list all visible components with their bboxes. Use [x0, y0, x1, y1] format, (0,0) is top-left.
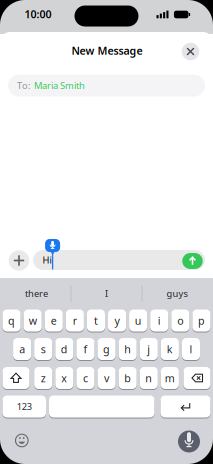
staticText: I: [105, 287, 108, 300]
staticText: k: [167, 342, 173, 356]
staticText: t: [94, 313, 98, 328]
button[interactable]: d: [55, 337, 73, 360]
button[interactable]: s: [34, 337, 52, 360]
staticText: v: [104, 371, 109, 385]
staticText: Hi: [42, 254, 51, 266]
staticText: o: [177, 313, 183, 328]
button[interactable]: v: [97, 366, 116, 389]
button[interactable]: 123: [2, 395, 46, 418]
button[interactable]: b: [119, 366, 137, 389]
staticText: l: [189, 342, 192, 356]
staticText: Maria Smith: [34, 79, 85, 92]
staticText: r: [73, 313, 77, 328]
button[interactable]: [182, 43, 199, 60]
staticText: m: [165, 371, 175, 385]
button[interactable]: n: [140, 366, 158, 389]
staticText: q: [8, 313, 15, 328]
staticText: there: [25, 287, 48, 300]
button[interactable]: a: [13, 337, 31, 360]
staticText: x: [61, 371, 67, 385]
button[interactable]: y: [108, 309, 126, 332]
button[interactable]: there: [3, 284, 69, 303]
button[interactable]: [49, 395, 154, 418]
button[interactable]: guys: [144, 284, 210, 303]
button[interactable]: I: [73, 284, 139, 303]
staticText: p: [198, 313, 205, 328]
staticText: 10:00: [24, 7, 51, 21]
staticText: z: [41, 371, 46, 385]
staticText: d: [61, 342, 68, 356]
button[interactable]: k: [161, 337, 179, 360]
button[interactable]: j: [140, 337, 158, 360]
staticText: n: [145, 371, 152, 385]
staticText: b: [124, 371, 131, 385]
button[interactable]: z: [34, 366, 52, 389]
button[interactable]: f: [76, 337, 94, 360]
button[interactable]: x: [55, 366, 73, 389]
staticText: e: [51, 313, 57, 328]
button[interactable]: o: [171, 309, 189, 332]
button[interactable]: w: [24, 309, 42, 332]
staticText: s: [41, 342, 46, 356]
staticText: u: [135, 313, 142, 328]
button[interactable]: r: [66, 309, 84, 332]
button[interactable]: [33, 250, 205, 270]
staticText: g: [103, 342, 110, 356]
button[interactable]: [9, 250, 29, 271]
button[interactable]: [178, 430, 200, 452]
staticText: f: [83, 342, 87, 356]
button[interactable]: m: [161, 366, 179, 389]
staticText: c: [83, 371, 88, 385]
staticText: New Message: [71, 43, 142, 58]
button[interactable]: t: [87, 309, 105, 332]
button[interactable]: [160, 395, 210, 418]
button[interactable]: [9, 427, 35, 453]
button[interactable]: e: [45, 309, 63, 332]
staticText: a: [19, 342, 25, 356]
button[interactable]: q: [2, 309, 21, 332]
staticText: i: [158, 313, 161, 328]
button[interactable]: l: [182, 337, 200, 360]
button[interactable]: u: [129, 309, 147, 332]
staticText: w: [29, 313, 37, 328]
button[interactable]: p: [192, 309, 210, 332]
staticText: To:: [17, 79, 31, 92]
button[interactable]: i: [150, 309, 168, 332]
staticText: j: [147, 342, 150, 356]
button[interactable]: [2, 366, 29, 389]
button[interactable]: To:: [8, 74, 205, 96]
button[interactable]: c: [76, 366, 94, 389]
button[interactable]: [183, 366, 210, 389]
button[interactable]: [182, 253, 203, 269]
button[interactable]: g: [97, 337, 116, 360]
staticText: y: [114, 313, 119, 328]
staticText: 123: [17, 400, 32, 413]
staticText: guys: [166, 287, 187, 300]
staticText: h: [124, 342, 131, 356]
button[interactable]: h: [119, 337, 137, 360]
